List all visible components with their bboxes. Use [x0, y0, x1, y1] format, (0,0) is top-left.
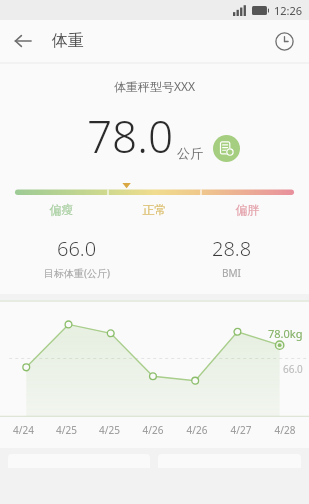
staticText: 偏瘦 [15, 202, 108, 217]
staticText: 4/26 [131, 423, 175, 437]
staticText: 4/25 [88, 423, 131, 437]
button[interactable]: Back [6, 24, 40, 58]
staticText: 28.8 [212, 235, 252, 262]
staticText: 66.0 [283, 362, 303, 376]
button[interactable]: 66.0 [0, 235, 154, 280]
staticText: 12:26 [274, 3, 303, 18]
button[interactable]: 28.8 [154, 235, 309, 280]
staticText: 体重 [52, 31, 84, 51]
staticText: 目标体重(公斤) [44, 266, 110, 280]
staticText: 4/27 [219, 423, 263, 437]
staticText: 4/26 [175, 423, 219, 437]
staticText: 体重秤型号XXX [114, 78, 196, 94]
staticText: BMI [222, 266, 241, 280]
button[interactable]: Report [213, 135, 240, 162]
staticText: 4/28 [263, 423, 307, 437]
staticText: 公斤 [177, 145, 203, 161]
button[interactable]: History [267, 24, 301, 58]
staticText: 正常 [108, 202, 201, 217]
staticText: 偏胖 [201, 202, 294, 217]
staticText: 4/25 [45, 423, 88, 437]
staticText: 4/24 [2, 423, 45, 437]
staticText: 78.0 [87, 106, 174, 166]
staticText: 78.0kg [268, 326, 303, 341]
staticText: 66.0 [57, 235, 97, 262]
